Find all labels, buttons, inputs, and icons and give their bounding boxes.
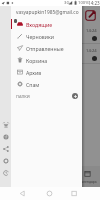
button[interactable]: Спам [11, 78, 82, 90]
button[interactable]: Почта [0, 166, 25, 187]
staticText: ПАПКИ [16, 94, 30, 99]
staticText: Отчёт за сентябрь, таблица внутри вложен… [4, 37, 86, 42]
button[interactable]: Андрей Смирнов [0, 24, 100, 44]
button[interactable]: Поделиться [0, 143, 11, 155]
staticText: 14:24 [86, 48, 97, 54]
button[interactable]: Помощь [0, 131, 11, 143]
button[interactable]: Архив [11, 66, 82, 78]
button[interactable]: Входящие [11, 18, 82, 30]
button[interactable]: Написать письмо [85, 10, 96, 21]
staticText: Ольга Петрова [4, 49, 37, 55]
button[interactable]: История [0, 167, 11, 179]
staticText: Корзина [26, 57, 48, 64]
button[interactable]: Отправленные [11, 42, 82, 54]
button[interactable]: Корзина [11, 54, 82, 66]
staticText: 14:23 [88, 0, 100, 6]
button[interactable]: Добавить папку [72, 93, 78, 99]
staticText: Черновики [26, 33, 54, 40]
button[interactable]: Настройки [0, 155, 11, 167]
staticText: Архив [26, 69, 42, 76]
button[interactable]: Черновики [11, 30, 82, 42]
staticText: 14:24 [86, 28, 97, 34]
staticText: Календарь [79, 179, 97, 184]
staticText: 100% [78, 0, 89, 6]
staticText: Почта [8, 179, 18, 184]
staticText: Андрей Смирнов [4, 29, 42, 35]
button[interactable]: Календарь [75, 166, 100, 187]
button[interactable]: Бонусы [0, 119, 11, 131]
button[interactable]: Ольга Петрова [0, 44, 100, 64]
staticText: Входящие [26, 21, 53, 28]
staticText: 3G [64, 0, 70, 6]
staticText: Отправленные [26, 45, 64, 52]
button[interactable]: vasyapupkin1985@gmail.com [11, 6, 82, 18]
staticText: Спам [26, 81, 40, 88]
staticText: vasyapupkin1985@gmail.com [16, 9, 82, 16]
staticText: Напоминание о встрече в 16:00 в перегово… [4, 57, 86, 62]
